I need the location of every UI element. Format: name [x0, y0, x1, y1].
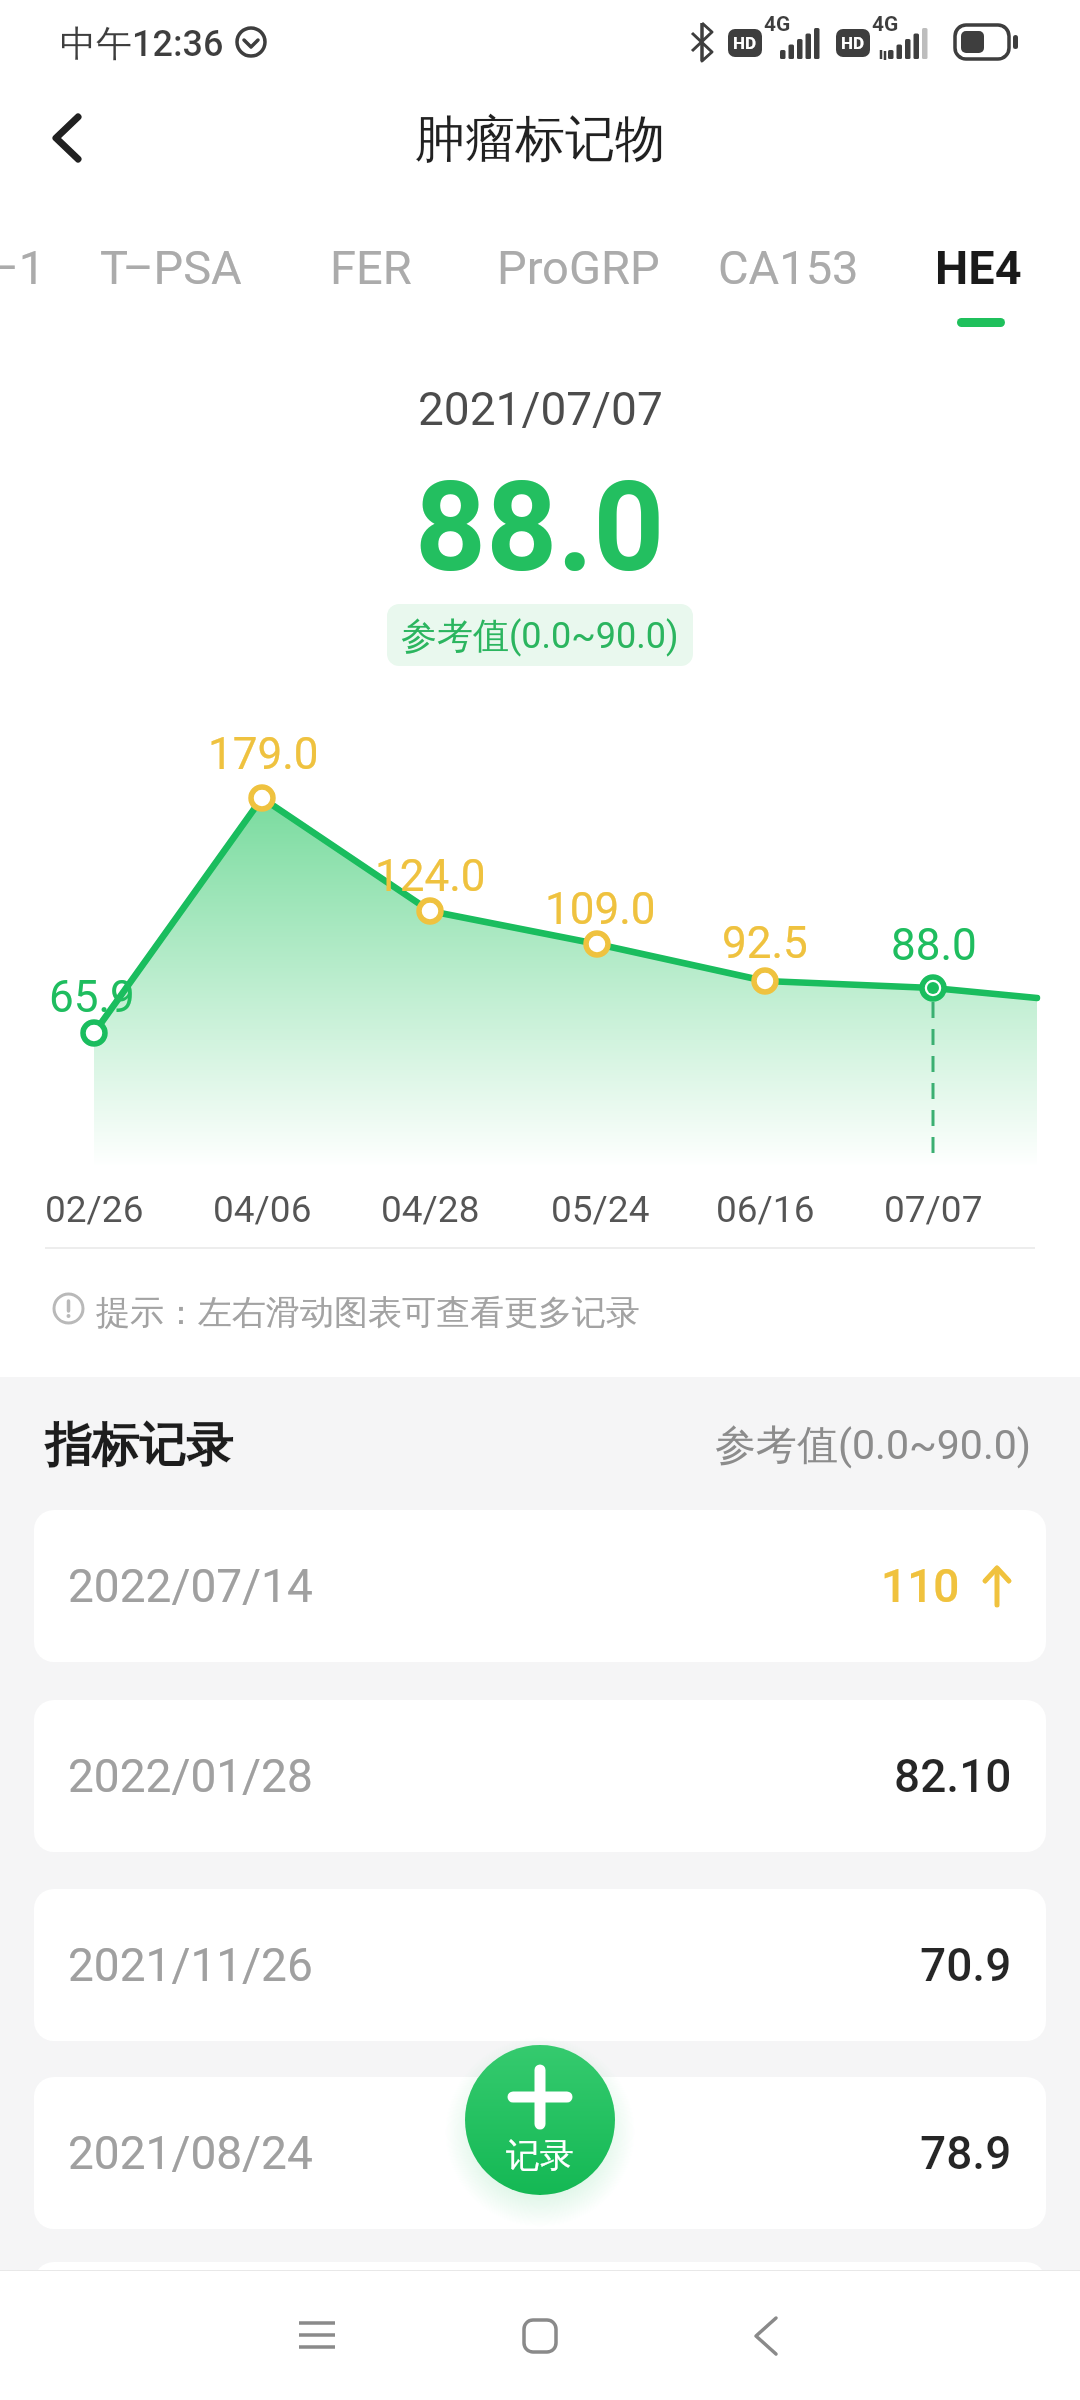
button[interactable]: T–PSA	[100, 240, 242, 295]
staticText: 2021/08/24	[68, 2126, 313, 2180]
button[interactable]	[34, 2262, 1046, 2400]
staticText: 04/28	[381, 1188, 480, 1231]
staticText: 88.0	[891, 919, 977, 971]
staticText: 参考值(0.0~90.0)	[715, 1420, 1032, 1472]
button[interactable]: 参考值(0.0~90.0)	[401, 604, 679, 666]
staticText: 肿瘤标记物	[415, 108, 665, 171]
button[interactable]: CA153	[718, 240, 859, 295]
button[interactable]: HE4	[935, 240, 1022, 295]
button[interactable]	[522, 2318, 558, 2354]
button[interactable]: 2021/11/26	[34, 1889, 1046, 2041]
staticText: 82.10	[894, 1749, 1012, 1803]
staticText: 2022/07/14	[68, 1559, 313, 1613]
staticText: 70.9	[920, 1938, 1012, 1992]
button[interactable]: ProGRP	[497, 240, 660, 295]
button[interactable]	[299, 2320, 335, 2350]
staticText: 2021/11/26	[68, 1938, 313, 1992]
staticText: 提示：左右滑动图表可查看更多记录	[96, 1291, 640, 1334]
staticText: 02/26	[45, 1188, 144, 1231]
staticText: HD	[733, 33, 757, 53]
staticText: 2022/01/28	[68, 1749, 313, 1803]
staticText: 指标记录	[45, 1416, 233, 1475]
staticText: 78.9	[920, 2126, 1012, 2180]
staticText: 110	[881, 1559, 960, 1613]
staticText: 06/16	[716, 1188, 815, 1231]
staticText: 124.0	[375, 850, 486, 902]
staticText: 参考值(0.0~90.0)	[401, 613, 679, 658]
button[interactable]: –1	[0, 240, 46, 295]
staticText: 4G	[764, 12, 791, 37]
staticText: HD	[841, 33, 865, 53]
staticText: 4G	[872, 12, 899, 37]
staticText: 记录	[506, 2134, 574, 2177]
button[interactable]: 2022/07/14	[34, 1510, 1046, 1662]
button[interactable]	[752, 2316, 778, 2356]
staticText: 07/07	[884, 1188, 983, 1231]
button[interactable]: 2022/01/28	[34, 1700, 1046, 1852]
staticText: 92.5	[722, 917, 808, 969]
staticText: 65.9	[49, 971, 135, 1023]
staticText: 05/24	[551, 1188, 650, 1231]
staticText: 88.0	[415, 455, 665, 600]
staticText: 中午12:36	[60, 21, 224, 66]
button[interactable]: 2021/08/24	[34, 2077, 1046, 2229]
staticText: 109.0	[545, 883, 656, 935]
button[interactable]: 记录	[465, 2045, 615, 2195]
staticText: 179.0	[208, 728, 319, 780]
button[interactable]	[52, 115, 82, 161]
staticText: 2021/07/07	[418, 382, 663, 436]
staticText: 04/06	[213, 1188, 312, 1231]
button[interactable]: FER	[330, 240, 412, 295]
